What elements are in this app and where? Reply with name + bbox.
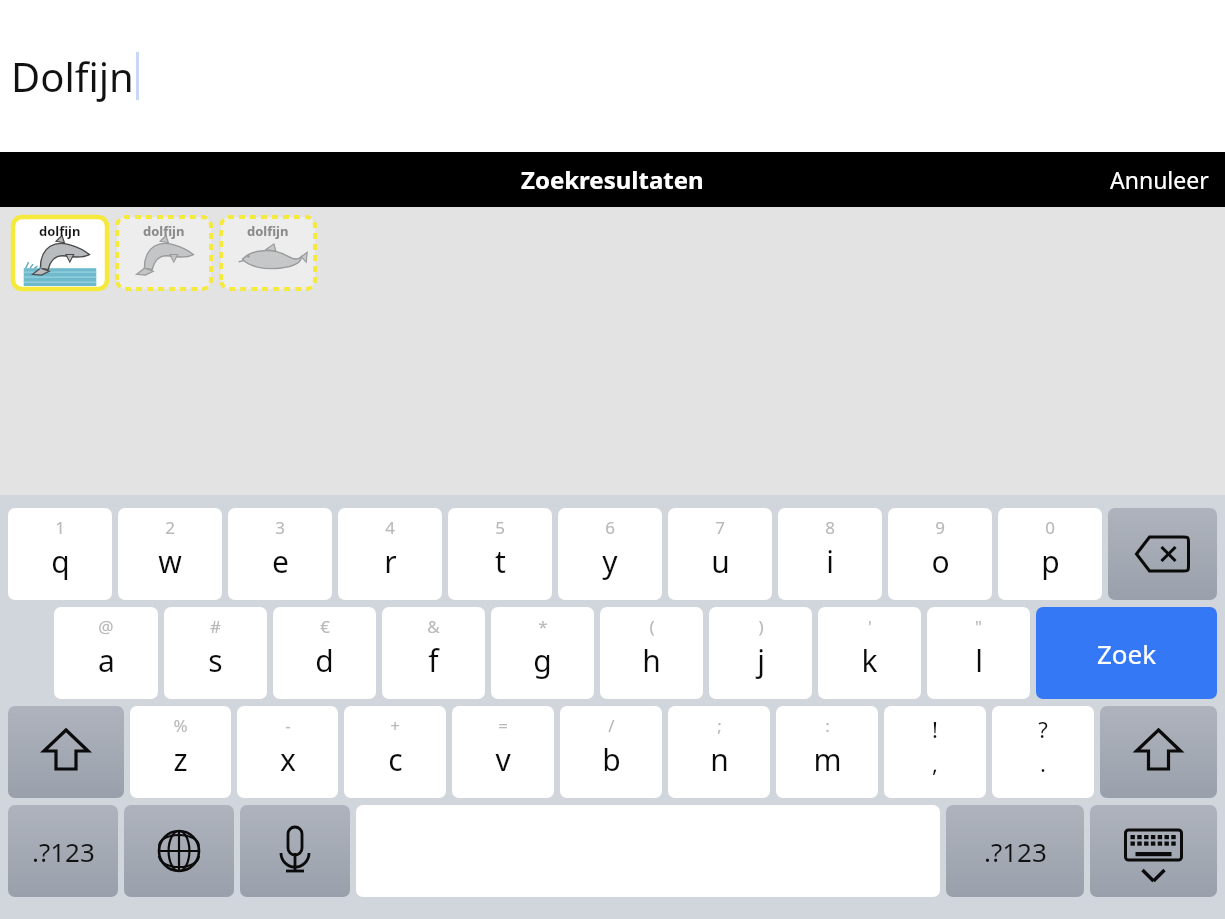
- staticText: %: [173, 714, 188, 737]
- button[interactable]: dolfijn: [115, 215, 213, 291]
- staticText: 6: [605, 516, 615, 539]
- button[interactable]: !: [884, 706, 986, 800]
- staticText: .: [1040, 748, 1046, 778]
- staticText: 3: [275, 516, 285, 539]
- staticText: =: [498, 714, 508, 737]
- staticText: *: [538, 615, 548, 638]
- staticText: .?123: [32, 834, 95, 869]
- staticText: ,: [932, 748, 938, 778]
- staticText: 0: [1045, 516, 1055, 539]
- staticText: 7: [715, 516, 725, 539]
- button[interactable]: &: [382, 607, 485, 701]
- staticText: 9: [935, 516, 945, 539]
- button[interactable]: 2: [118, 508, 222, 602]
- staticText: Annuleer: [1110, 164, 1209, 195]
- staticText: dolfijn: [247, 222, 289, 240]
- staticText: €: [320, 615, 330, 638]
- button[interactable]: 6: [558, 508, 662, 602]
- button[interactable]: ": [927, 607, 1030, 701]
- button[interactable]: 4: [338, 508, 442, 602]
- button[interactable]: =: [452, 706, 554, 800]
- staticText: ;: [717, 714, 722, 737]
- button[interactable]: 3: [228, 508, 332, 602]
- button[interactable]: Shift: [1100, 706, 1217, 800]
- button[interactable]: 7: [668, 508, 772, 602]
- staticText: ): [758, 615, 764, 638]
- staticText: c: [388, 739, 403, 780]
- staticText: j: [757, 640, 765, 681]
- staticText: u: [711, 541, 730, 582]
- staticText: 8: [825, 516, 835, 539]
- staticText: dolfijn: [143, 222, 185, 240]
- button[interactable]: *: [491, 607, 594, 701]
- staticText: ': [868, 615, 872, 638]
- button[interactable]: Dictate: [240, 805, 350, 899]
- staticText: n: [710, 739, 729, 780]
- button[interactable]: Numbers: [946, 805, 1084, 899]
- button[interactable]: 5: [448, 508, 552, 602]
- staticText: k: [861, 640, 878, 681]
- staticText: dolfijn: [39, 222, 81, 240]
- staticText: ?: [1038, 714, 1048, 744]
- staticText: z: [173, 739, 188, 780]
- button[interactable]: [356, 805, 940, 899]
- button[interactable]: Annuleer: [1094, 156, 1225, 203]
- staticText: h: [642, 640, 661, 681]
- staticText: s: [208, 640, 223, 681]
- staticText: g: [533, 640, 552, 681]
- button[interactable]: Hide keyboard: [1090, 805, 1217, 899]
- button[interactable]: Shift: [8, 706, 124, 800]
- staticText: :: [825, 714, 830, 737]
- staticText: @: [98, 615, 114, 638]
- button[interactable]: dolfijn: [11, 215, 109, 291]
- button[interactable]: ): [709, 607, 812, 701]
- staticText: (: [649, 615, 655, 638]
- staticText: 2: [165, 516, 175, 539]
- staticText: v: [495, 739, 511, 780]
- button[interactable]: Zoek: [1036, 607, 1217, 701]
- staticText: q: [51, 541, 70, 582]
- staticText: .?123: [984, 834, 1047, 869]
- button[interactable]: 0: [998, 508, 1102, 602]
- staticText: d: [315, 640, 334, 681]
- button[interactable]: #: [164, 607, 267, 701]
- button[interactable]: 9: [888, 508, 992, 602]
- staticText: o: [931, 541, 950, 582]
- staticText: e: [272, 541, 289, 582]
- staticText: f: [428, 640, 439, 681]
- staticText: b: [602, 739, 621, 780]
- button[interactable]: ?: [992, 706, 1094, 800]
- staticText: r: [384, 541, 397, 582]
- staticText: Dolfijn: [11, 49, 134, 103]
- button[interactable]: Backspace: [1108, 508, 1217, 602]
- staticText: -: [285, 714, 291, 737]
- staticText: a: [98, 640, 115, 681]
- staticText: Zoekresultaten: [521, 163, 704, 196]
- button[interactable]: /: [560, 706, 662, 800]
- button[interactable]: @: [54, 607, 158, 701]
- button[interactable]: :: [776, 706, 878, 800]
- staticText: +: [390, 714, 400, 737]
- staticText: m: [813, 739, 842, 780]
- staticText: /: [608, 714, 615, 737]
- button[interactable]: %: [130, 706, 231, 800]
- staticText: x: [280, 739, 296, 780]
- button[interactable]: -: [237, 706, 338, 800]
- button[interactable]: Numbers: [8, 805, 118, 899]
- button[interactable]: Change language: [124, 805, 234, 899]
- button[interactable]: 8: [778, 508, 882, 602]
- staticText: w: [158, 541, 182, 582]
- staticText: t: [495, 541, 506, 582]
- button[interactable]: ;: [668, 706, 770, 800]
- button[interactable]: +: [344, 706, 446, 800]
- staticText: 4: [385, 516, 395, 539]
- staticText: !: [932, 714, 938, 744]
- staticText: Zoek: [1097, 636, 1157, 671]
- button[interactable]: ': [818, 607, 921, 701]
- staticText: ": [975, 615, 982, 638]
- button[interactable]: 1: [8, 508, 112, 602]
- button[interactable]: (: [600, 607, 703, 701]
- staticText: &: [427, 615, 440, 638]
- button[interactable]: €: [273, 607, 376, 701]
- button[interactable]: dolfijn: [219, 215, 317, 291]
